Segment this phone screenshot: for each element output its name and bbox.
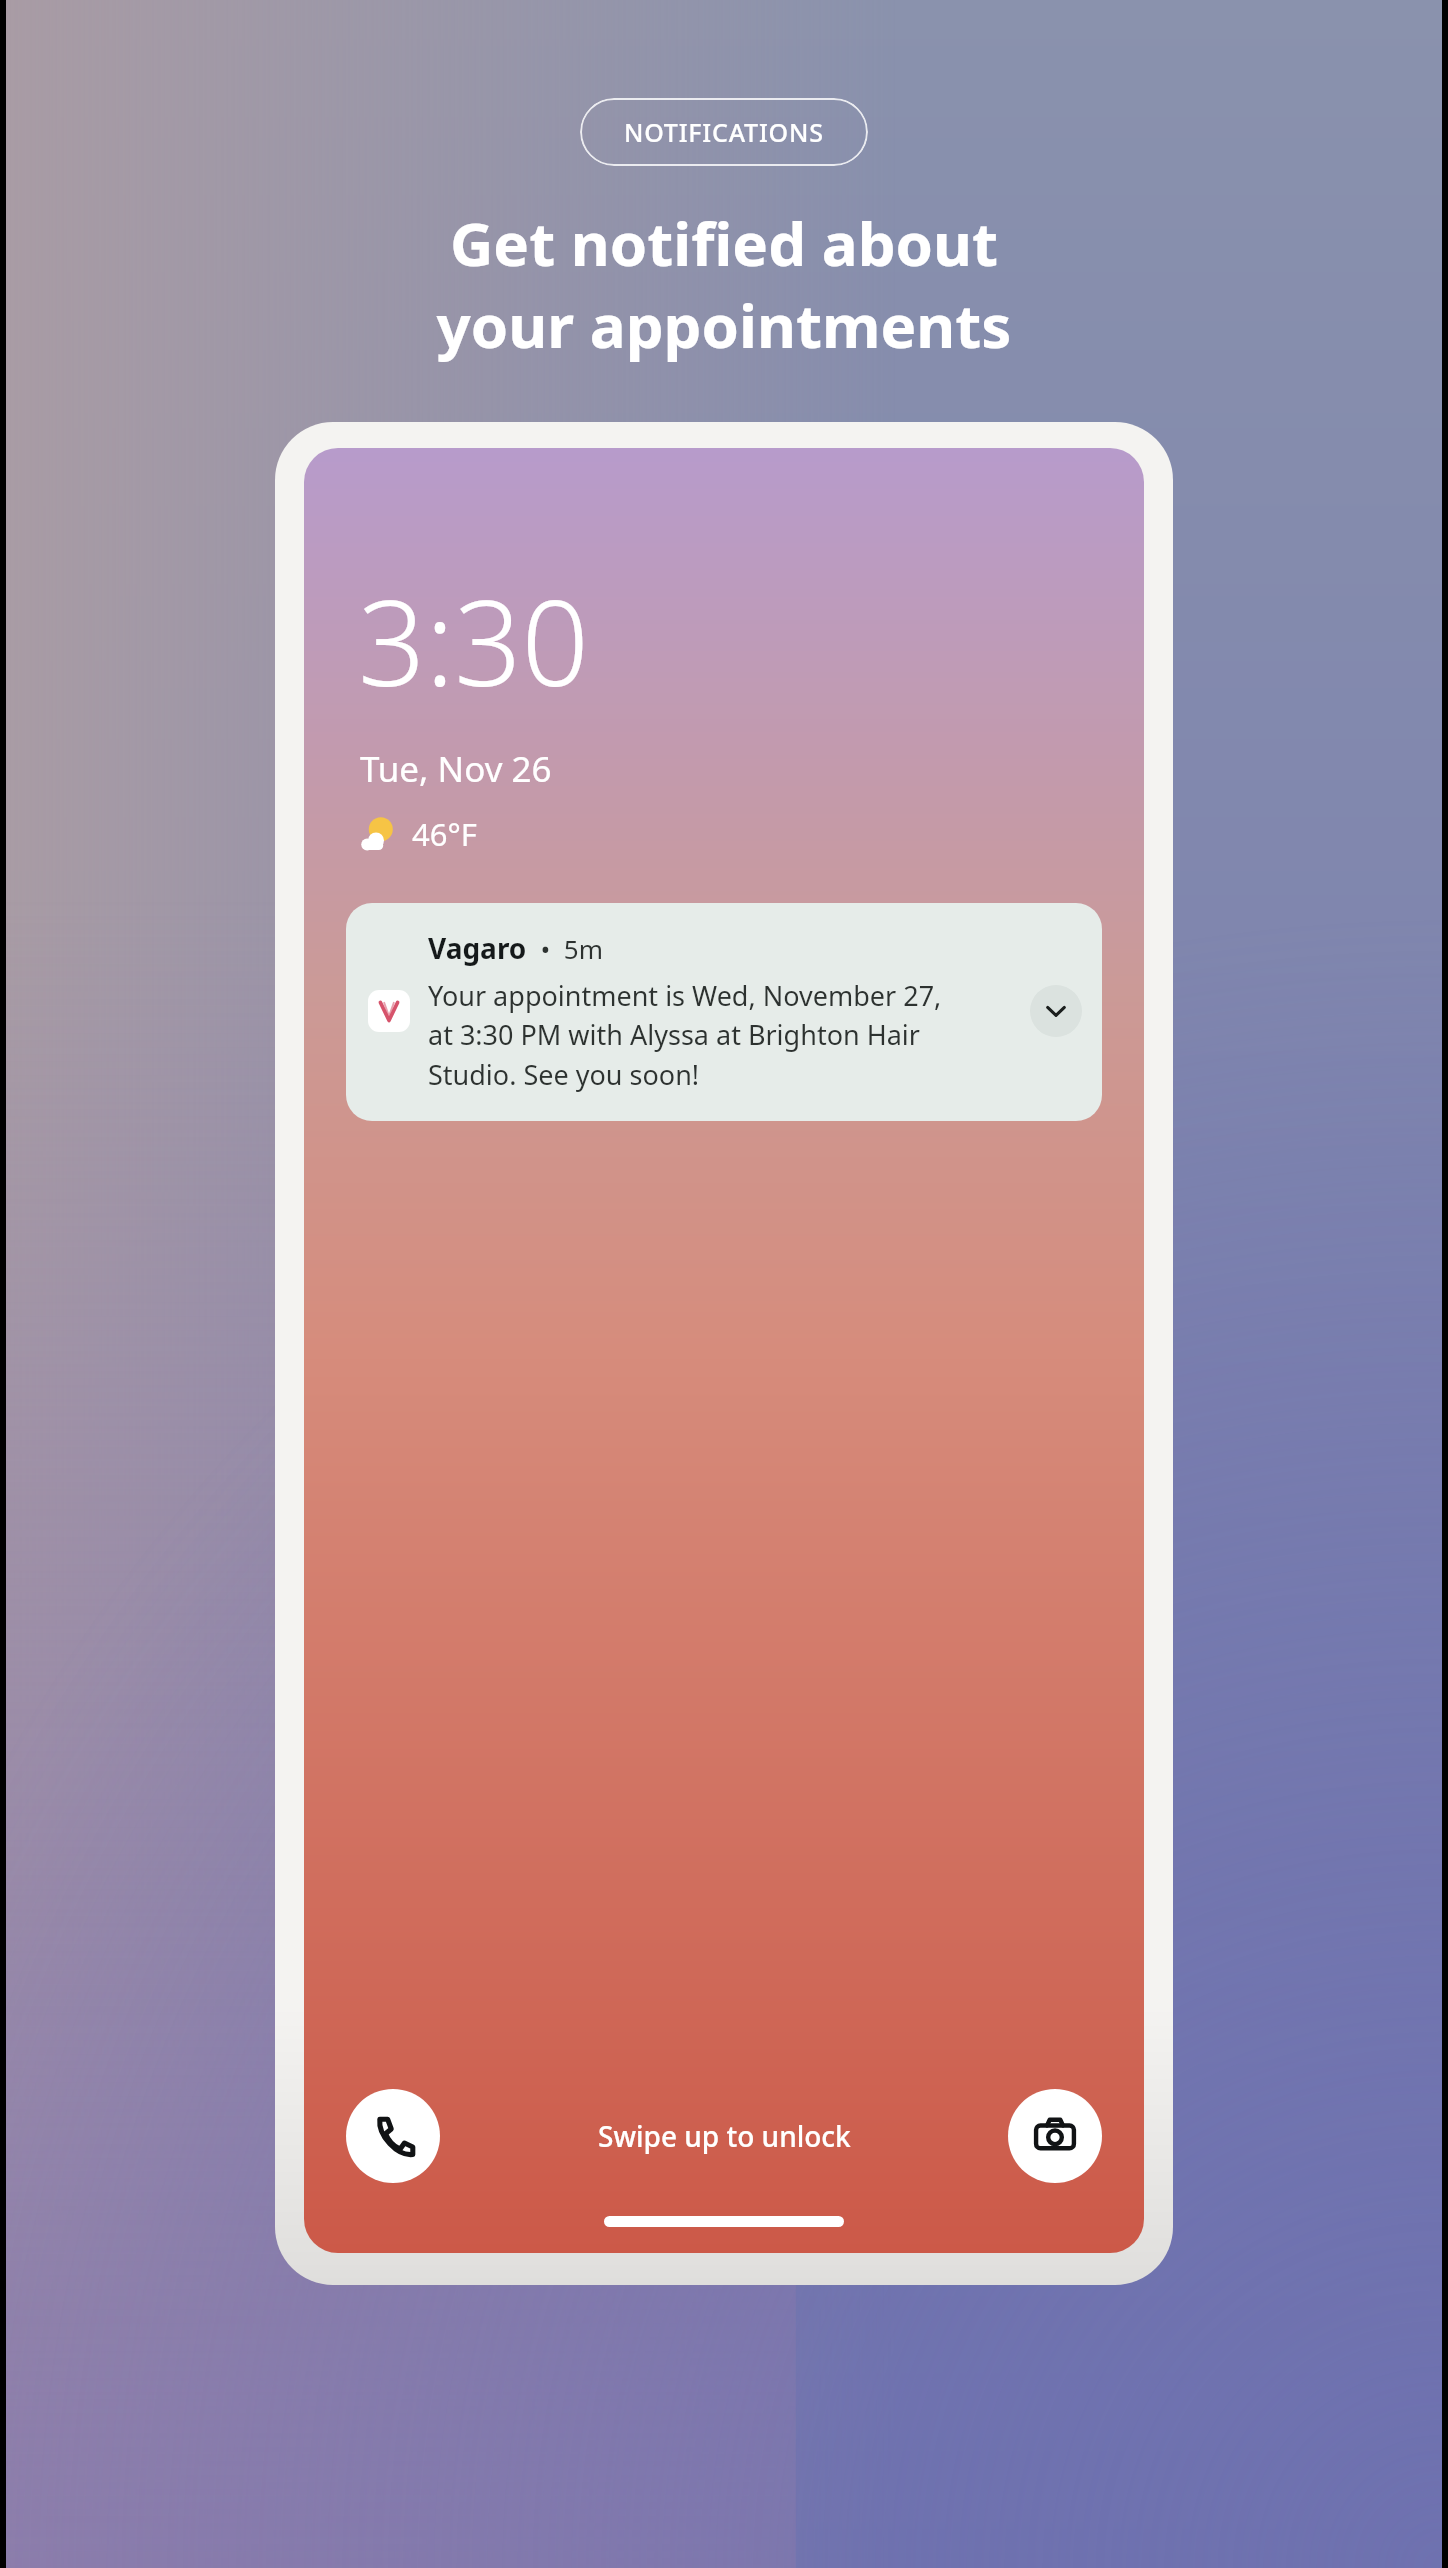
staticText: 3:30 bbox=[358, 560, 589, 721]
button[interactable]: Camera bbox=[1008, 2089, 1102, 2183]
button[interactable]: Phone bbox=[346, 2089, 440, 2183]
staticText: Get notified about your appointments bbox=[46, 202, 1402, 366]
staticText: Tue, Nov 26 bbox=[360, 745, 552, 793]
button[interactable]: NOTIFICATIONS bbox=[580, 98, 868, 166]
staticText: 46°F bbox=[412, 813, 477, 855]
staticText: NOTIFICATIONS bbox=[624, 115, 824, 149]
staticText: Swipe up to unlock bbox=[598, 2117, 851, 2155]
button[interactable]: Expand notification bbox=[1030, 985, 1082, 1037]
staticText: • 5m bbox=[527, 931, 603, 966]
button[interactable]: Vagaro bbox=[346, 903, 1102, 1121]
staticText: Your appointment is Wed, November 27, at… bbox=[428, 977, 942, 1093]
staticText: Vagaro bbox=[428, 929, 527, 967]
